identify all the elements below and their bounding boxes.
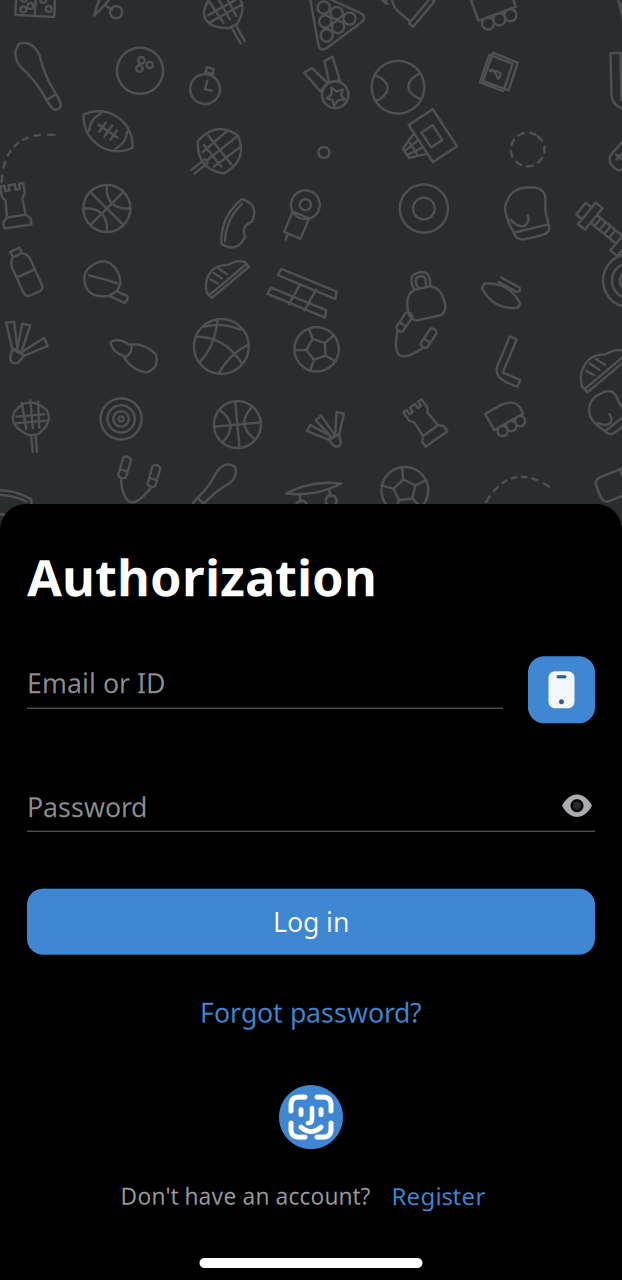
button[interactable]: Forgot password? xyxy=(0,995,622,1030)
button[interactable]: Log in xyxy=(27,889,595,955)
staticText: Forgot password? xyxy=(200,995,422,1030)
staticText: Register xyxy=(391,1180,485,1212)
staticText: Don't have an account? xyxy=(120,1181,370,1211)
button[interactable]: Sign in with ID card xyxy=(528,656,595,723)
staticText: Password xyxy=(27,789,147,825)
button[interactable]: Register xyxy=(391,1180,485,1212)
staticText: Log in xyxy=(273,904,349,939)
staticText: Authorization xyxy=(27,543,377,610)
button[interactable]: Sign in with Face ID xyxy=(279,1085,343,1149)
staticText: Email or ID xyxy=(27,665,165,701)
button[interactable]: Show password xyxy=(561,795,595,832)
